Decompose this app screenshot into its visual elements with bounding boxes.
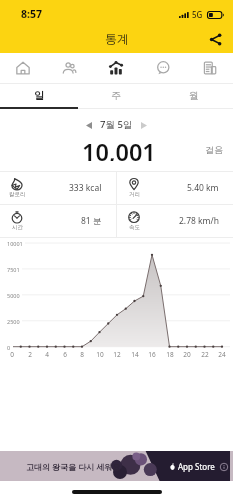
button[interactable]: 거리 <box>117 172 233 204</box>
staticText: 2.78 km/h <box>179 215 219 227</box>
button[interactable]: Next day <box>133 114 155 136</box>
button[interactable]: Ad information <box>218 461 229 472</box>
button[interactable]: Advertisement <box>0 451 233 481</box>
staticText: 칼로리 <box>9 191 26 198</box>
staticText: 81 분 <box>81 215 102 227</box>
staticText: 10 <box>96 350 104 359</box>
staticText: 일 <box>34 89 44 102</box>
button[interactable]: News <box>186 53 233 83</box>
staticText: 22 <box>201 350 209 359</box>
staticText: 고대의 왕국을 다시 세워요 <box>26 461 121 472</box>
staticText: 5.40 km <box>187 182 219 194</box>
button[interactable]: Share <box>203 27 227 51</box>
staticText: 16 <box>148 350 156 359</box>
button[interactable]: Statistics <box>92 53 139 83</box>
staticText: 주 <box>111 89 121 102</box>
staticText: 거리 <box>129 191 140 198</box>
staticText: 0 <box>10 350 14 359</box>
staticText: 8:57 <box>21 7 42 21</box>
staticText: 월 <box>189 89 199 102</box>
button[interactable]: Previous day <box>78 114 100 136</box>
button[interactable]: 시간 <box>0 205 116 237</box>
staticText: 2500 <box>7 318 20 325</box>
staticText: 14 <box>131 350 139 359</box>
staticText: 12 <box>113 350 121 359</box>
staticText: 333 kcal <box>69 182 102 194</box>
staticText: 6 <box>63 350 67 359</box>
button[interactable]: Chat <box>139 53 186 83</box>
staticText: 시간 <box>12 224 23 231</box>
button[interactable]: 칼로리 <box>0 172 116 204</box>
staticText: 7월 5일 <box>100 118 133 131</box>
staticText: 통계 <box>105 31 129 46</box>
button[interactable]: 일 <box>0 84 77 109</box>
staticText: 2 <box>28 350 32 359</box>
staticText: 10,001 <box>82 136 156 161</box>
staticText: 8 <box>80 350 84 359</box>
button[interactable]: 속도 <box>117 205 233 237</box>
staticText: 0 <box>7 344 11 351</box>
button[interactable]: 월 <box>155 84 233 109</box>
staticText: 걸음 <box>205 144 223 155</box>
button[interactable]: 주 <box>77 84 155 109</box>
button[interactable]: Friends <box>46 53 92 83</box>
staticText: 18 <box>166 350 174 359</box>
staticText: 10001 <box>7 240 23 247</box>
staticText: 7501 <box>7 266 20 273</box>
staticText: App Store <box>178 461 215 472</box>
staticText: 20 <box>183 350 191 359</box>
staticText: 5G <box>192 9 203 20</box>
staticText: 속도 <box>129 224 140 231</box>
staticText: 4 <box>45 350 49 359</box>
staticText: 5000 <box>7 292 20 299</box>
staticText: 24 <box>218 350 226 359</box>
button[interactable]: Home <box>0 53 46 83</box>
